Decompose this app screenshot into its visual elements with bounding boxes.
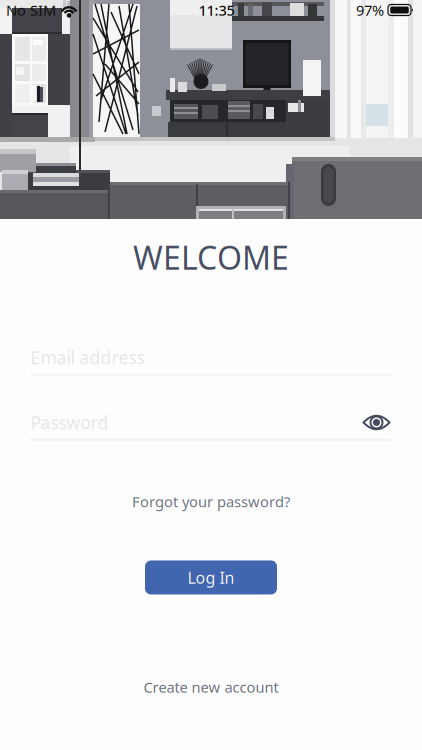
staticText: 11:35 bbox=[198, 0, 234, 20]
staticText: 97% bbox=[356, 0, 384, 20]
staticText: Password bbox=[30, 411, 108, 434]
staticText: Log In bbox=[187, 567, 234, 588]
button[interactable]: Log In bbox=[145, 560, 277, 594]
staticText: No SIM bbox=[6, 0, 56, 20]
staticText: Email address bbox=[30, 346, 144, 369]
button[interactable]: Show password bbox=[361, 411, 391, 433]
staticText: Create new account bbox=[143, 677, 278, 697]
button[interactable]: Forgot your password? bbox=[121, 491, 301, 511]
staticText: WELCOME bbox=[133, 236, 289, 278]
staticText: Forgot your password? bbox=[132, 492, 290, 511]
button[interactable]: Create new account bbox=[121, 677, 301, 697]
